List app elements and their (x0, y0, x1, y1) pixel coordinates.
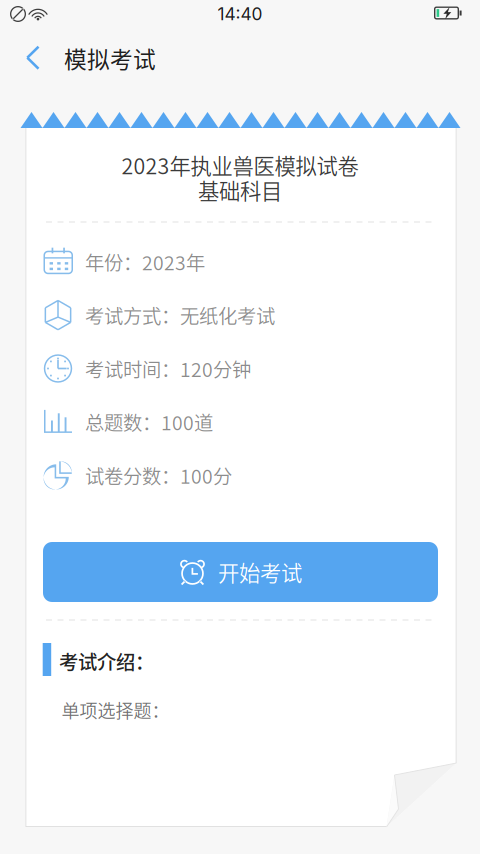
staticText: 2023年执业兽医模拟试卷 (121, 150, 358, 180)
staticText: 考试方式：无纸化考试 (85, 301, 275, 329)
staticText: 单项选择题： (61, 697, 169, 723)
staticText: 开始考试 (218, 557, 302, 587)
staticText: 模拟考试 (64, 42, 156, 74)
button[interactable]: 开始考试 (43, 542, 438, 602)
staticText: 试卷分数：100分 (85, 461, 232, 489)
staticText: 14:40 (217, 3, 262, 24)
staticText: 基础科目 (198, 175, 282, 205)
staticText: 总题数：100道 (85, 408, 213, 436)
staticText: 考试介绍： (59, 647, 154, 675)
staticText: 年份：2023年 (85, 248, 205, 276)
button[interactable]: Back (11, 35, 55, 81)
staticText: 考试时间：120分钟 (85, 354, 251, 382)
